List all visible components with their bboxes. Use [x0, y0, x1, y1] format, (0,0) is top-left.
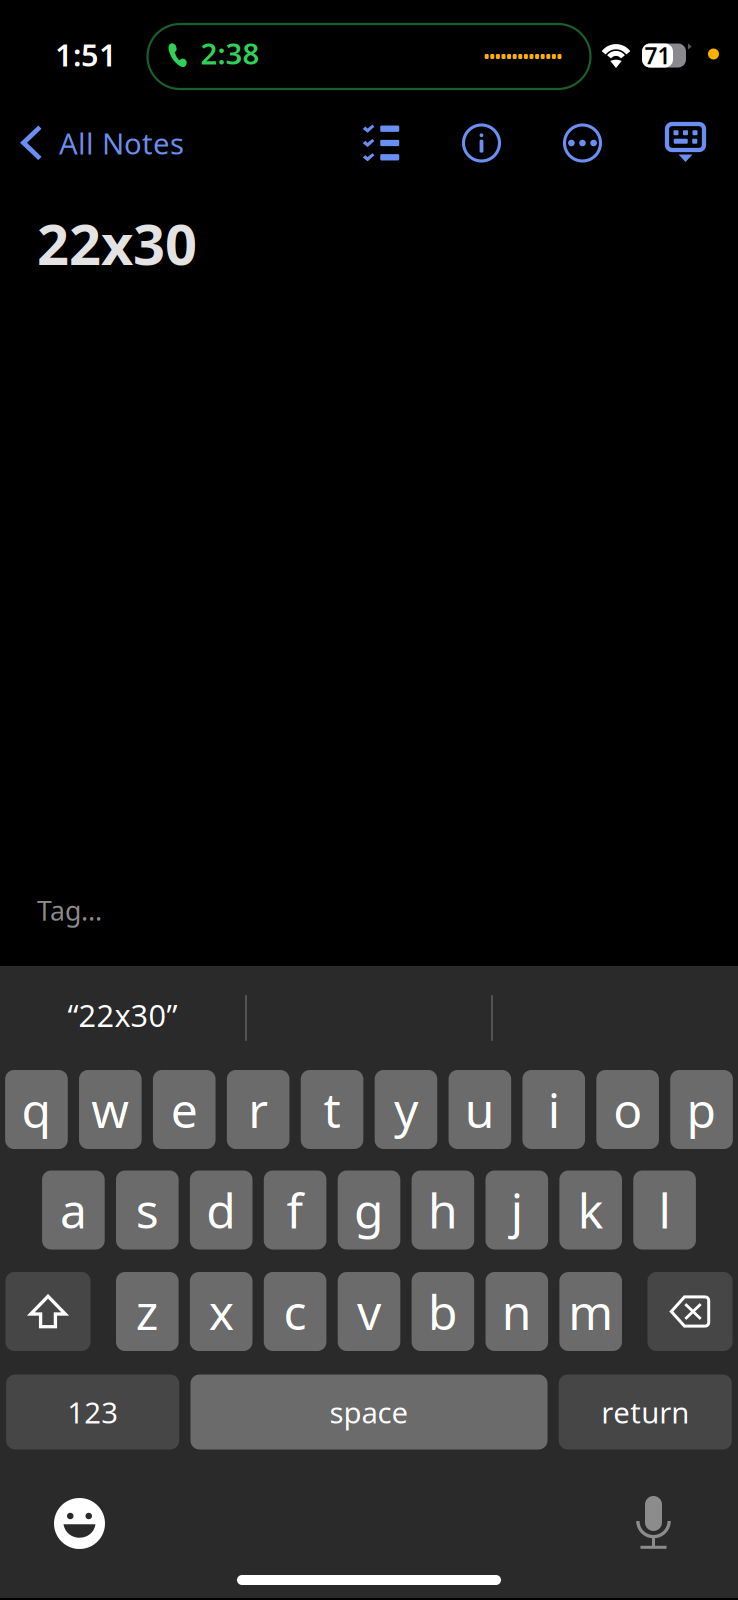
button[interactable]: t — [301, 1070, 363, 1149]
button[interactable]: Hide Keyboard — [633, 112, 738, 174]
button[interactable]: x — [190, 1272, 252, 1351]
staticText: o — [613, 1078, 642, 1141]
button[interactable]: i — [522, 1070, 585, 1149]
staticText: All Notes — [59, 123, 184, 162]
button[interactable]: y — [375, 1070, 437, 1149]
button[interactable]: k — [559, 1170, 622, 1249]
staticText: “22x30” — [67, 995, 177, 1035]
staticText: x — [209, 1280, 234, 1343]
button[interactable]: All Notes — [0, 112, 230, 174]
staticText: k — [578, 1178, 604, 1242]
button[interactable]: r — [227, 1070, 289, 1149]
button[interactable]: m — [559, 1272, 622, 1351]
staticText: y — [394, 1078, 418, 1141]
button[interactable]: l — [633, 1170, 696, 1249]
button[interactable]: space — [190, 1374, 547, 1449]
button[interactable]: n — [485, 1272, 548, 1351]
button[interactable]: u — [448, 1070, 511, 1149]
button[interactable]: q — [5, 1070, 68, 1149]
button[interactable]: w — [79, 1070, 142, 1149]
staticText: z — [136, 1280, 159, 1343]
staticText: g — [354, 1178, 384, 1242]
button[interactable]: d — [190, 1170, 252, 1249]
staticText: 22x30 — [37, 206, 197, 280]
button[interactable]: Dictate — [630, 1486, 686, 1561]
staticText: q — [21, 1078, 51, 1141]
staticText: r — [248, 1078, 268, 1141]
staticText: a — [60, 1178, 87, 1242]
staticText: v — [357, 1280, 381, 1343]
staticText: s — [136, 1178, 159, 1242]
button[interactable]: e — [153, 1070, 215, 1149]
staticText: return — [601, 1392, 689, 1431]
staticText: 2:38 — [200, 33, 259, 72]
staticText: f — [287, 1178, 304, 1242]
button[interactable]: g — [338, 1170, 400, 1249]
staticText: l — [659, 1178, 671, 1242]
button[interactable]: s — [116, 1170, 179, 1249]
button[interactable]: o — [596, 1070, 659, 1149]
staticText: j — [511, 1178, 523, 1242]
staticText: 71 — [644, 40, 670, 70]
staticText: h — [428, 1178, 458, 1242]
staticText: n — [502, 1280, 532, 1343]
button[interactable]: Info — [431, 112, 532, 174]
staticText: b — [428, 1280, 458, 1343]
staticText: Tag... — [37, 893, 102, 928]
button[interactable]: p — [670, 1070, 733, 1149]
button[interactable]: Checklist — [331, 112, 431, 174]
button[interactable]: Delete — [647, 1272, 732, 1351]
staticText: d — [206, 1178, 236, 1242]
staticText: m — [568, 1280, 613, 1343]
staticText: p — [686, 1078, 716, 1141]
button[interactable]: a — [42, 1170, 105, 1249]
staticText: i — [548, 1078, 560, 1141]
button[interactable]: v — [338, 1272, 400, 1351]
button[interactable]: 123 — [6, 1374, 179, 1449]
staticText: u — [465, 1078, 495, 1141]
button[interactable]: z — [116, 1272, 179, 1351]
button[interactable]: Emoji — [44, 1488, 115, 1559]
staticText: 1:51 — [55, 34, 117, 75]
staticText: t — [324, 1078, 341, 1141]
button[interactable]: More — [532, 112, 633, 174]
button[interactable]: c — [264, 1272, 326, 1351]
button[interactable]: return — [559, 1374, 732, 1449]
staticText: 123 — [67, 1392, 118, 1431]
staticText: e — [171, 1078, 198, 1141]
staticText: space — [329, 1392, 408, 1431]
staticText: w — [91, 1078, 129, 1141]
button[interactable]: f — [264, 1170, 326, 1249]
button[interactable]: j — [485, 1170, 548, 1249]
button[interactable]: Shift — [5, 1272, 90, 1351]
button[interactable]: h — [412, 1170, 474, 1249]
button[interactable]: b — [412, 1272, 474, 1351]
staticText: c — [284, 1280, 307, 1343]
